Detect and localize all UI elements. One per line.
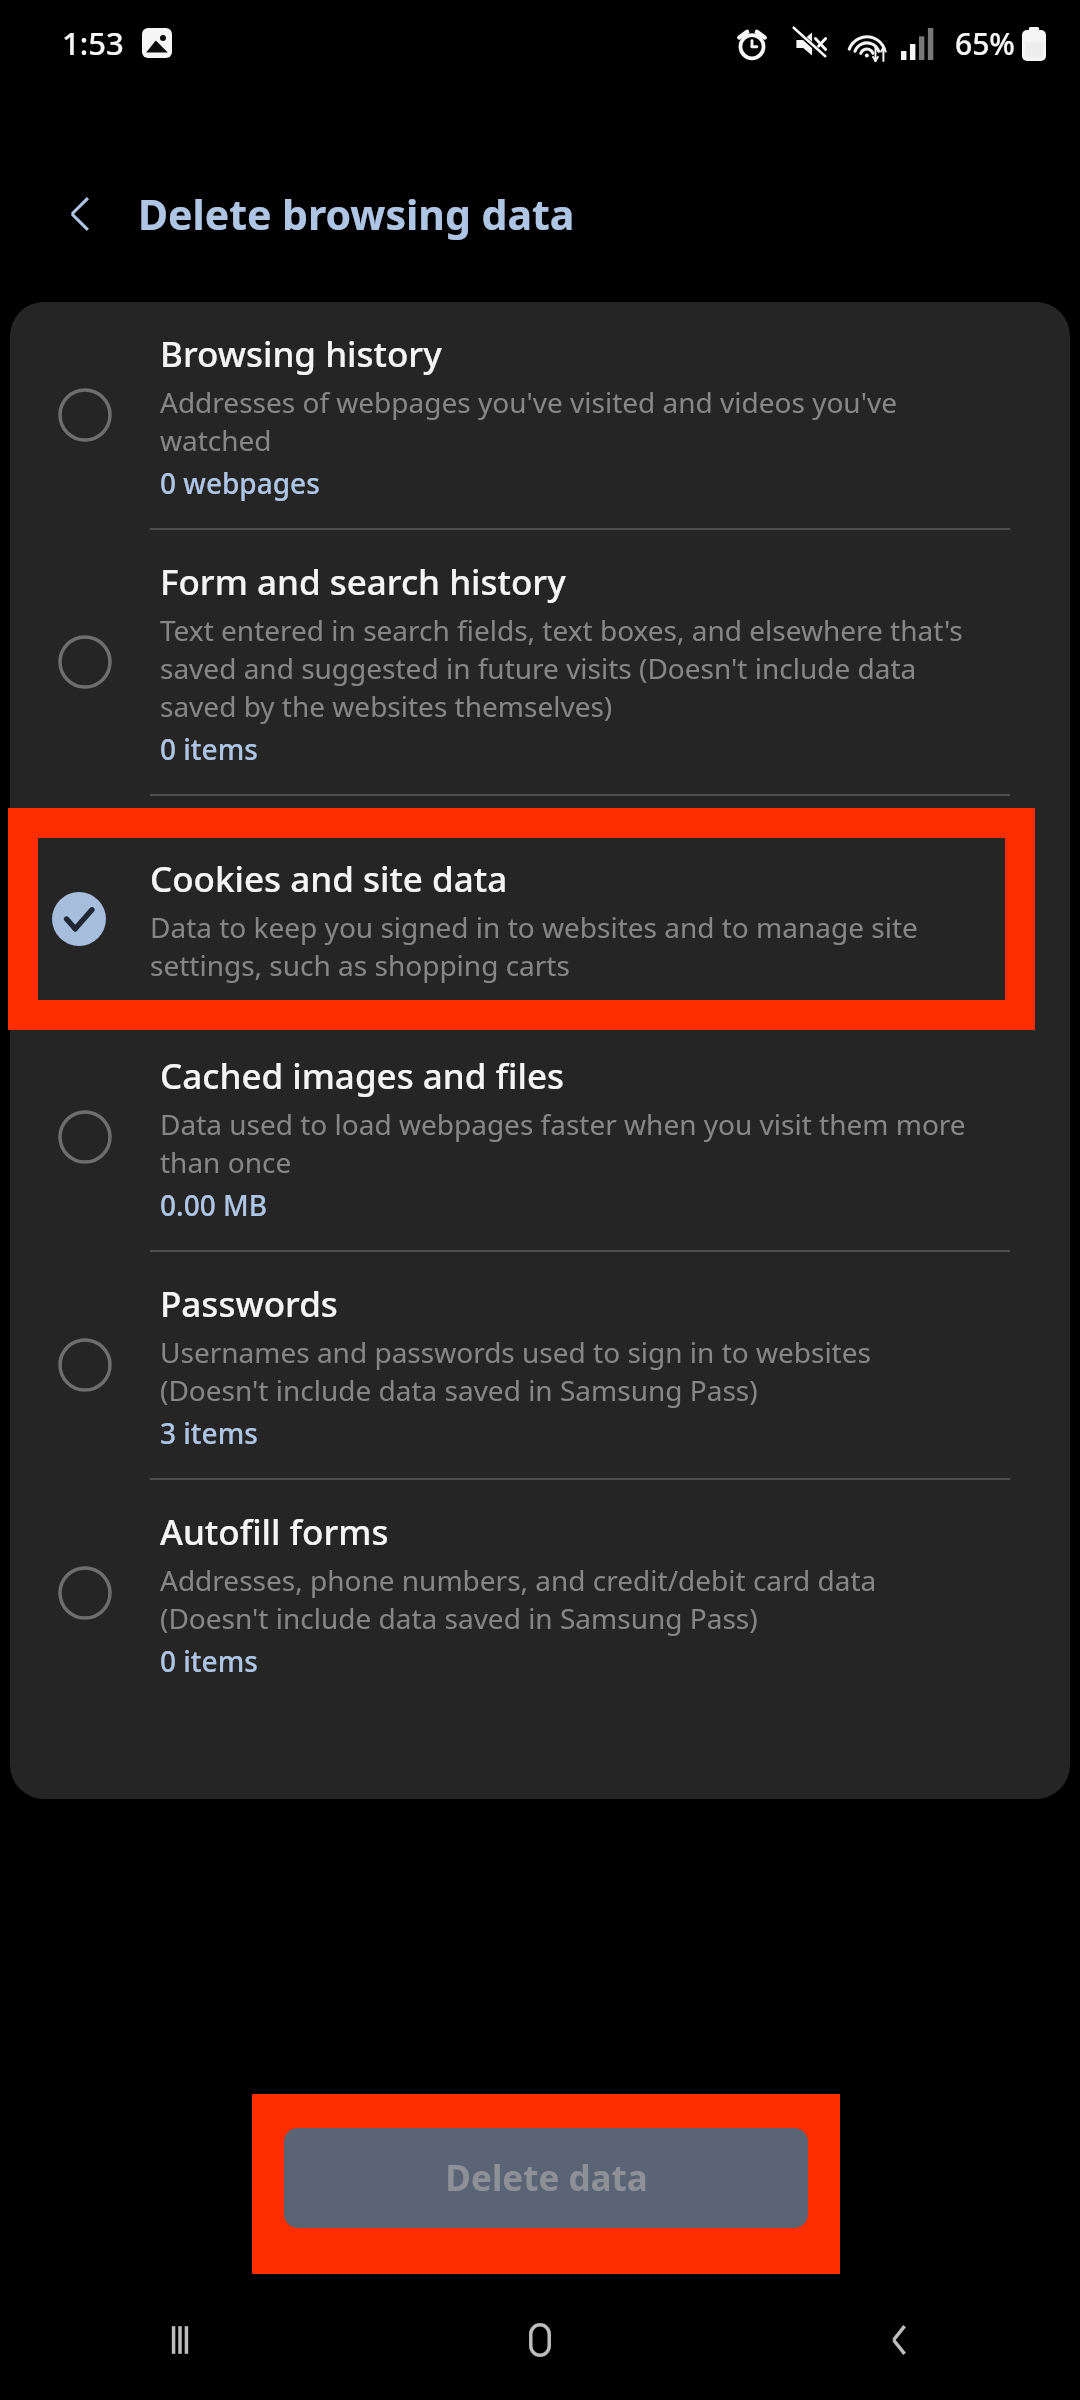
button[interactable]: Cookies and site data: [8, 808, 1035, 1030]
staticText: Passwords: [160, 1280, 338, 1328]
staticText: Addresses of webpages you've visited and…: [160, 383, 897, 459]
button[interactable]: Autofill forms: [10, 1480, 1070, 1706]
staticText: 0 webpages: [160, 464, 320, 502]
staticText: Addresses, phone numbers, and credit/deb…: [160, 1561, 877, 1637]
staticText: Browsing history: [160, 330, 442, 378]
staticText: 0 webpages: [160, 958, 320, 996]
staticText: 3 items: [160, 1414, 258, 1452]
staticText: 0.00 MB: [160, 1186, 267, 1224]
staticText: 0 items: [160, 730, 258, 768]
staticText: Cookies and site data: [150, 855, 508, 903]
button[interactable]: Navigate up: [42, 174, 122, 254]
staticText: Text entered in search fields, text boxe…: [160, 611, 963, 725]
button[interactable]: Form and search history: [10, 530, 1070, 794]
staticText: Delete data: [445, 2154, 648, 2202]
staticText: 65%: [955, 23, 1015, 64]
button[interactable]: Cached images and files: [10, 1024, 1070, 1250]
button[interactable]: Delete data: [284, 2128, 808, 2228]
staticText: Delete browsing data: [138, 186, 575, 242]
staticText: Data used to load webpages faster when y…: [160, 1105, 966, 1181]
staticText: 1:53: [62, 22, 124, 64]
staticText: Data to keep you signed in to websites a…: [150, 908, 918, 984]
button[interactable]: Browsing history: [10, 302, 1070, 528]
button[interactable]: Cookies and site data: [10, 796, 1070, 1022]
staticText: Form and search history: [160, 558, 566, 606]
button[interactable]: Home: [360, 2280, 720, 2400]
staticText: 0 items: [160, 1642, 258, 1680]
staticText: Data to keep you signed in to websites a…: [160, 877, 928, 953]
staticText: Cookies and site data: [160, 824, 518, 872]
staticText: Autofill forms: [160, 1508, 389, 1556]
button[interactable]: Recent apps: [0, 2280, 360, 2400]
button[interactable]: Back: [720, 2280, 1080, 2400]
button[interactable]: Passwords: [10, 1252, 1070, 1478]
staticText: Cached images and files: [160, 1052, 565, 1100]
staticText: Usernames and passwords used to sign in …: [160, 1333, 871, 1409]
